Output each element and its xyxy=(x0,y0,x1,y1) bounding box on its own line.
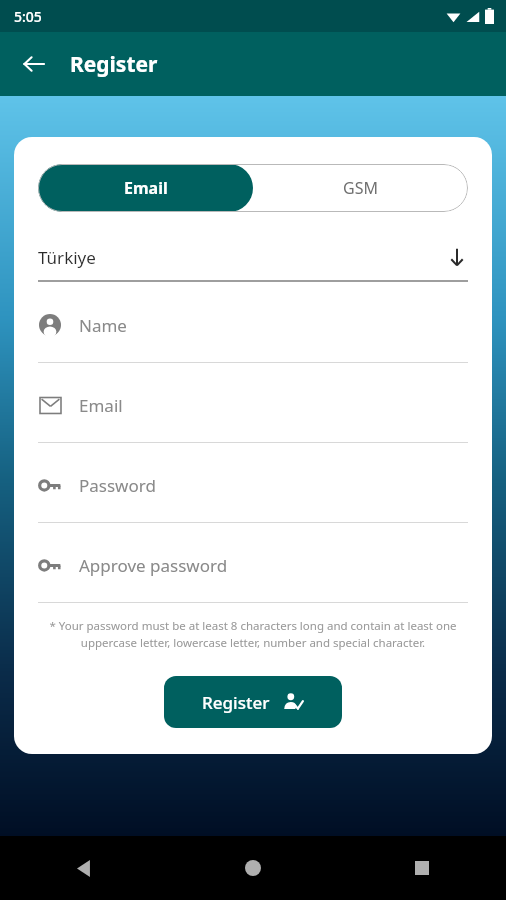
staticText: Email xyxy=(124,177,168,199)
staticText: GSM xyxy=(343,177,378,199)
staticText: 5:05 xyxy=(14,7,42,26)
button[interactable]: GSM xyxy=(253,164,468,212)
button[interactable]: Email xyxy=(38,388,468,443)
staticText: Türkiye xyxy=(38,246,446,269)
button[interactable]: Back xyxy=(0,836,168,900)
staticText: Register xyxy=(70,50,158,79)
staticText: Password xyxy=(79,474,156,497)
staticText: Name xyxy=(79,314,127,337)
button[interactable]: Name xyxy=(38,308,468,363)
button[interactable]: Email xyxy=(38,164,253,212)
button[interactable]: Türkiye xyxy=(38,240,468,282)
staticText: Register xyxy=(202,691,270,714)
staticText: Approve password xyxy=(79,554,228,577)
button[interactable]: Password xyxy=(38,468,468,523)
staticText: * Your password must be at least 8 chara… xyxy=(38,618,468,650)
button[interactable]: Back xyxy=(10,40,58,88)
button[interactable]: Approve password xyxy=(38,548,468,603)
button[interactable]: Home xyxy=(168,836,337,900)
button[interactable]: Register xyxy=(164,676,342,728)
button[interactable]: Recent apps xyxy=(337,836,506,900)
staticText: Email xyxy=(79,394,123,417)
